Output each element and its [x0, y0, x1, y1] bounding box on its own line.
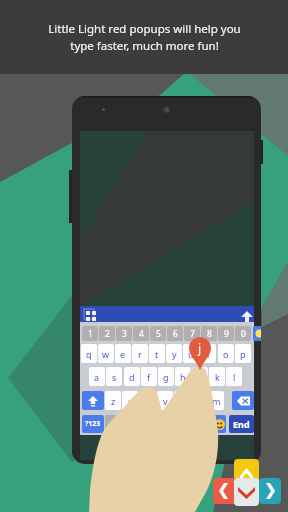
button[interactable]: z [105, 391, 121, 410]
staticText: 6 [173, 328, 178, 340]
staticText: 1 [88, 328, 93, 340]
staticText: 0 [241, 328, 246, 340]
staticText: 3 [122, 328, 127, 340]
button[interactable]: 9 [218, 326, 234, 341]
staticText: 4 [139, 328, 144, 340]
button[interactable]: y [166, 344, 182, 363]
button[interactable]: Previous [213, 478, 238, 504]
button[interactable]: End [229, 415, 254, 433]
staticText: End [233, 418, 250, 430]
staticText: o [223, 348, 229, 360]
button[interactable]: 0 [235, 326, 251, 341]
staticText: u [188, 348, 194, 360]
button[interactable]: p [235, 344, 251, 363]
button[interactable]: 5 [150, 326, 166, 341]
staticText: 9 [224, 328, 229, 340]
button[interactable]: b [174, 391, 190, 410]
button[interactable]: s [106, 367, 122, 386]
button[interactable]: d [124, 367, 140, 386]
staticText: 5 [156, 328, 161, 340]
staticText: s [112, 371, 117, 383]
staticText: 8 [207, 328, 212, 340]
staticText: p [240, 348, 246, 360]
button[interactable]: Next [259, 478, 281, 504]
button[interactable]: 3 [116, 326, 132, 341]
staticText: Little Light red popups will help you ty… [48, 21, 241, 53]
staticText: x [128, 395, 133, 407]
button[interactable]: x [122, 391, 138, 410]
button[interactable]: Keyboard layouts [83, 308, 95, 320]
button[interactable]: l [226, 367, 242, 386]
button[interactable]: ?123 [82, 415, 104, 433]
button[interactable]: j [192, 367, 208, 386]
button[interactable]: 2 [99, 326, 115, 341]
staticText: r [138, 348, 142, 360]
button[interactable]: Expand [239, 308, 251, 320]
button[interactable]: e [115, 344, 131, 363]
staticText: h [180, 371, 186, 383]
staticText: g [163, 371, 169, 383]
staticText: j [198, 340, 202, 356]
staticText: , [110, 419, 113, 430]
staticText: m [212, 395, 221, 407]
button[interactable]: w [98, 344, 114, 363]
button[interactable]: v [157, 391, 173, 410]
button[interactable]: 7 [184, 326, 200, 341]
button[interactable]: 1 [82, 326, 98, 341]
button[interactable]: App [234, 478, 259, 506]
staticText: w [102, 348, 110, 360]
button[interactable]: Theme [253, 326, 261, 341]
staticText: 7 [190, 328, 195, 340]
button[interactable]: k [209, 367, 225, 386]
button[interactable]: t [149, 344, 165, 363]
staticText: e [120, 348, 126, 360]
staticText: t [155, 348, 159, 360]
staticText: 2 [105, 328, 110, 340]
staticText: k [215, 371, 220, 383]
button[interactable]: 8 [201, 326, 217, 341]
button[interactable]: Backspace [232, 391, 254, 410]
button[interactable]: 4 [133, 326, 149, 341]
staticText: i [207, 348, 210, 360]
button[interactable]: Emoji [212, 415, 226, 433]
staticText: f [147, 371, 151, 383]
button[interactable]: m [208, 391, 224, 410]
staticText: y [172, 348, 177, 360]
button[interactable] [203, 415, 221, 433]
button[interactable]: a [89, 367, 105, 386]
button[interactable]: Up [234, 459, 259, 490]
button[interactable]: f [141, 367, 157, 386]
button[interactable]: 6 [167, 326, 183, 341]
button[interactable]: g [158, 367, 174, 386]
staticText: v [163, 395, 168, 407]
staticText: d [129, 371, 135, 383]
button[interactable]: , [105, 415, 117, 433]
button[interactable]: r [132, 344, 148, 363]
button[interactable]: q [81, 344, 97, 363]
staticText: q [86, 348, 92, 360]
staticText: a [94, 371, 100, 383]
button[interactable]: h [175, 367, 191, 386]
button[interactable]: u [183, 344, 199, 363]
button[interactable]: i [200, 344, 216, 363]
button[interactable]: Shift [82, 391, 104, 410]
button[interactable]: o [218, 344, 234, 363]
staticText: ?123 [85, 419, 101, 429]
staticText: z [111, 395, 116, 407]
staticText: l [233, 371, 236, 383]
